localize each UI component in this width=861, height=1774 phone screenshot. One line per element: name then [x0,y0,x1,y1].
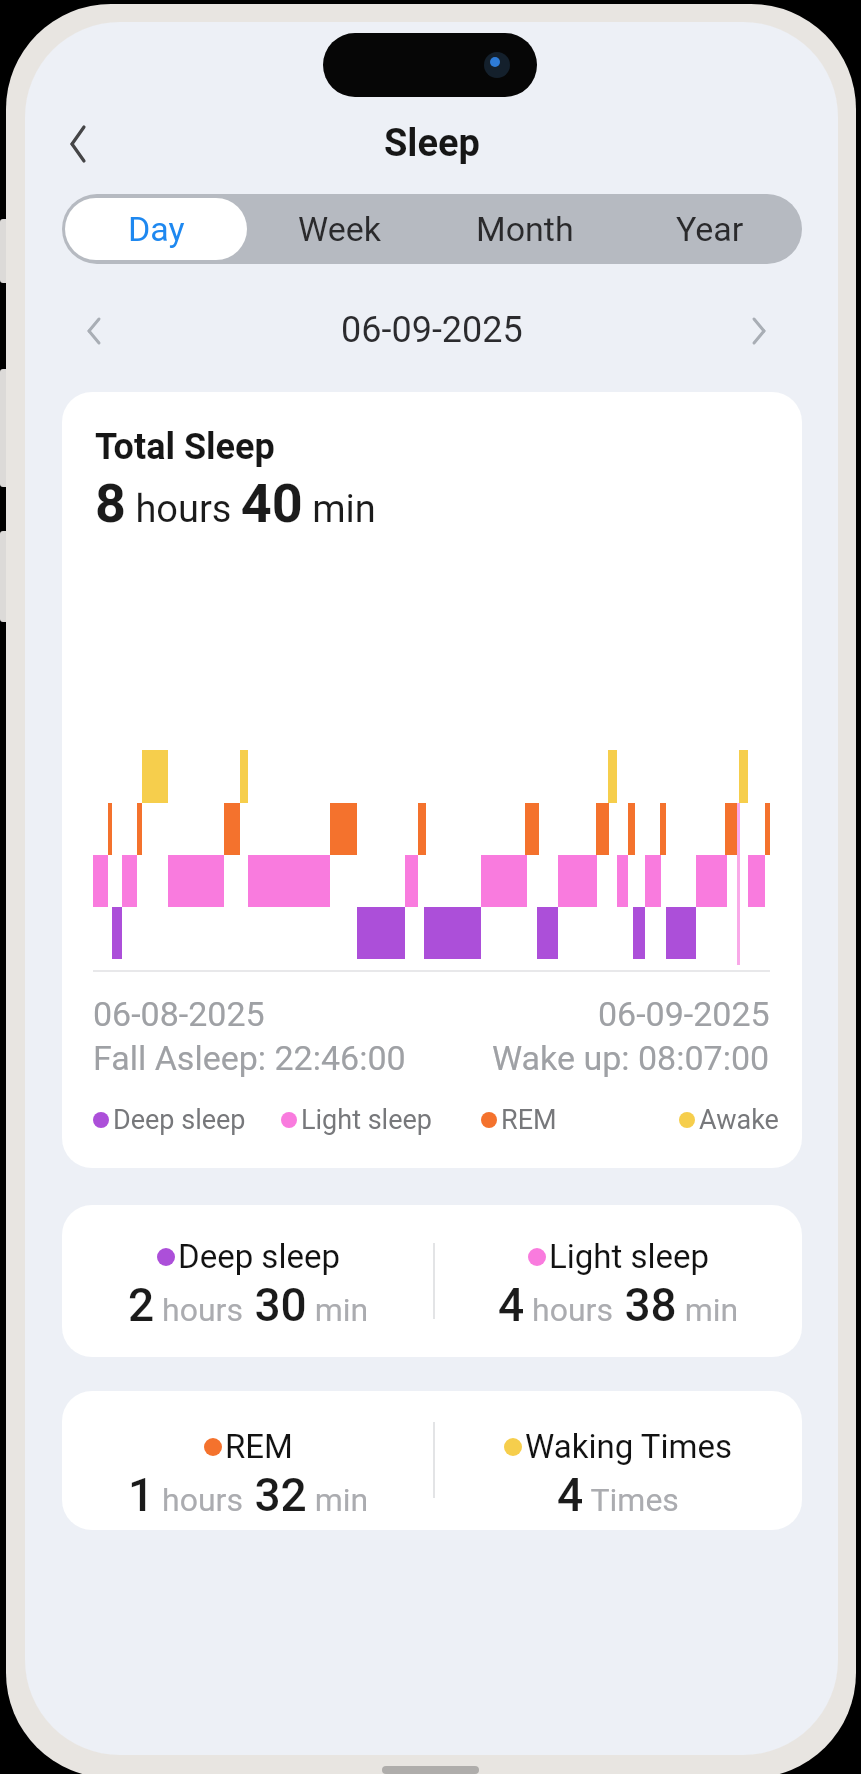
staticText: Fall Asleep: 22:46:00 [93,1038,406,1078]
staticText: Light sleep [549,1237,710,1276]
staticText: Deep sleep [113,1104,246,1136]
staticText: 8 hours 40 min [95,472,376,535]
staticText: 1 hours 32 min [128,1468,369,1522]
staticText: Sleep [384,121,480,165]
button[interactable]: Month [432,194,617,264]
staticText: REM [501,1104,557,1136]
staticText: 06-08-2025 [93,994,265,1034]
button[interactable]: REM [62,1427,434,1530]
staticText: 06-09-2025 [341,309,523,349]
staticText: Year [676,209,744,249]
button[interactable]: Light sleep [434,1237,802,1357]
staticText: Wake up: 08:07:00 [492,1038,770,1078]
button[interactable]: Week [247,194,432,264]
staticText: REM [225,1427,293,1466]
button[interactable]: Waking Times [434,1427,802,1530]
staticText: Deep sleep [178,1237,340,1276]
staticText: Awake [699,1104,779,1136]
staticText: Waking Times [525,1427,732,1466]
staticText: Day [128,209,185,249]
button[interactable] [748,317,768,345]
staticText: Light sleep [301,1104,432,1136]
staticText: Week [298,209,381,249]
staticText: Total Sleep [95,426,275,468]
staticText: 06-09-2025 [598,994,770,1034]
button[interactable]: Year [617,194,802,264]
staticText: 4 Times [557,1468,679,1522]
button[interactable]: Deep sleep [62,1237,434,1357]
button[interactable]: Day [65,198,247,260]
staticText: 2 hours 30 min [128,1278,369,1332]
staticText: 4 hours 38 min [498,1278,739,1332]
button[interactable] [69,123,87,165]
staticText: Month [476,209,574,249]
button[interactable] [85,317,105,345]
